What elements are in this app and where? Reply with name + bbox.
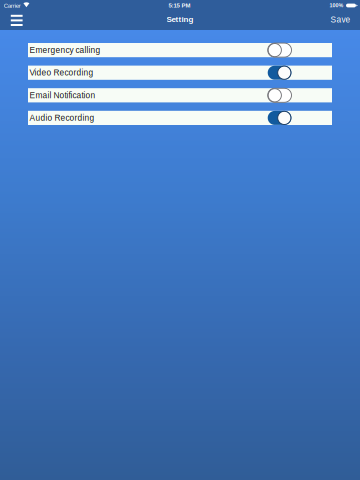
staticText: Emergency calling: [29, 45, 100, 55]
button[interactable]: Audio Recording, on: [268, 111, 291, 125]
button[interactable]: Email Notification, off: [268, 88, 291, 102]
staticText: Audio Recording: [29, 113, 94, 122]
button[interactable]: Emergency calling, off: [268, 43, 291, 57]
staticText: 100%: [329, 2, 343, 8]
button[interactable]: Save: [323, 12, 360, 29]
staticText: Setting: [166, 15, 193, 24]
button[interactable]: Menu: [0, 11, 30, 29]
staticText: 5:15 PM: [168, 2, 190, 9]
button[interactable]: Video Recording: [28, 66, 332, 80]
button[interactable]: Video Recording, on: [268, 66, 291, 80]
staticText: Carrier: [4, 2, 21, 9]
staticText: Video Recording: [29, 68, 93, 77]
staticText: Email Notification: [29, 91, 95, 100]
button[interactable]: Audio Recording: [28, 111, 332, 125]
staticText: Save: [330, 15, 350, 24]
button[interactable]: Emergency calling: [28, 43, 332, 57]
button[interactable]: Email Notification: [28, 88, 332, 102]
